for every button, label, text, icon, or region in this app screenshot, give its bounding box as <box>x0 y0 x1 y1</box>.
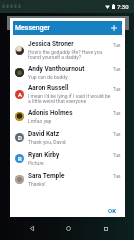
staticText: Messenger <box>15 24 50 32</box>
button[interactable]: New message <box>107 21 121 35</box>
button[interactable]: Andy Vanthournout <box>10 62 125 83</box>
button[interactable]: Recent apps <box>99 217 113 240</box>
staticText: Ryan Kirby <box>28 151 60 159</box>
staticText: Picture <box>28 160 44 166</box>
staticText: 7:30 <box>117 3 129 10</box>
staticText: Lmfao yep <box>28 118 52 124</box>
staticText: Adonis Holmes <box>28 109 73 117</box>
button[interactable]: R <box>10 148 125 169</box>
button[interactable]: Jessica Stroner <box>10 39 125 62</box>
staticText: OK <box>108 207 116 214</box>
button[interactable]: D <box>10 127 125 148</box>
button[interactable]: Messenger <box>13 21 122 35</box>
staticText: D <box>18 134 22 141</box>
staticText: How's the godaddy life? Have you found y… <box>28 49 111 61</box>
button[interactable]: A <box>10 83 125 106</box>
staticText: Tue <box>113 132 121 137</box>
staticText: Yup can do buddy <box>28 74 68 80</box>
button[interactable]: Sara Temple <box>10 169 125 190</box>
staticText: Sara Temple <box>28 172 65 180</box>
staticText: Tue <box>113 87 121 92</box>
staticText: Tue <box>113 153 121 158</box>
staticText: Tue <box>113 174 121 179</box>
staticText: R <box>18 155 22 162</box>
staticText: David Katz <box>28 130 60 138</box>
staticText: I mean I'd be lying if I said it would b… <box>28 93 111 105</box>
staticText: Thanks! <box>28 181 46 187</box>
staticText: Aaron Russell <box>28 84 69 92</box>
staticText: Thank you, David <box>28 139 66 145</box>
staticText: A <box>18 91 22 98</box>
button[interactable]: Adonis Holmes <box>10 106 125 127</box>
button[interactable]: Back <box>25 217 39 240</box>
button[interactable]: OK <box>100 203 125 217</box>
staticText: Andy Vanthournout <box>28 65 85 73</box>
button[interactable]: Home <box>60 217 76 240</box>
staticText: Tue <box>113 43 121 48</box>
staticText: Tue <box>113 67 121 72</box>
staticText: Tue <box>113 111 121 116</box>
staticText: Jessica Stroner <box>28 40 74 48</box>
